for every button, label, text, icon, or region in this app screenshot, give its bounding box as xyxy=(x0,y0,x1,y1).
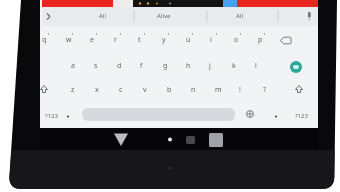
button[interactable] xyxy=(160,130,180,148)
staticText: q xyxy=(42,35,47,45)
staticText: b xyxy=(167,85,172,95)
staticText: x xyxy=(95,85,99,95)
button[interactable] xyxy=(42,7,318,26)
staticText: e xyxy=(90,35,94,45)
staticText: v xyxy=(143,85,147,95)
staticText: s xyxy=(94,61,98,71)
staticText: All xyxy=(236,12,243,20)
staticText: r xyxy=(114,35,117,45)
staticText: m xyxy=(215,85,222,95)
staticText: h xyxy=(186,61,191,71)
button[interactable] xyxy=(108,130,134,148)
staticText: a xyxy=(71,61,75,71)
button[interactable] xyxy=(290,61,302,73)
staticText: f xyxy=(140,61,143,71)
staticText: u xyxy=(186,35,191,45)
staticText: k xyxy=(232,61,236,71)
staticText: w xyxy=(66,35,72,45)
staticText: g xyxy=(163,61,168,71)
staticText: d xyxy=(117,61,122,71)
staticText: All xyxy=(99,12,106,20)
staticText: z xyxy=(71,85,75,95)
button[interactable]: ?123 xyxy=(45,112,58,120)
staticText: ? xyxy=(263,85,267,95)
staticText: i xyxy=(210,35,212,45)
button[interactable]: All xyxy=(236,12,243,20)
staticText: ?123 xyxy=(45,112,58,120)
staticText: l xyxy=(255,61,257,71)
staticText: j xyxy=(209,61,211,71)
staticText: p xyxy=(258,35,263,45)
staticText: t xyxy=(138,35,141,45)
staticText: ?123 xyxy=(295,112,308,120)
button[interactable]: ?123 xyxy=(295,112,308,120)
staticText: ! xyxy=(239,85,241,95)
staticText: Alive xyxy=(157,12,171,20)
staticText: o xyxy=(234,35,239,45)
button[interactable]: All xyxy=(99,12,106,20)
button[interactable] xyxy=(82,108,235,121)
staticText: n xyxy=(191,85,196,95)
staticText: c xyxy=(119,85,123,95)
button[interactable]: Alive xyxy=(157,12,171,20)
button[interactable] xyxy=(202,130,228,148)
staticText: y xyxy=(162,35,166,45)
